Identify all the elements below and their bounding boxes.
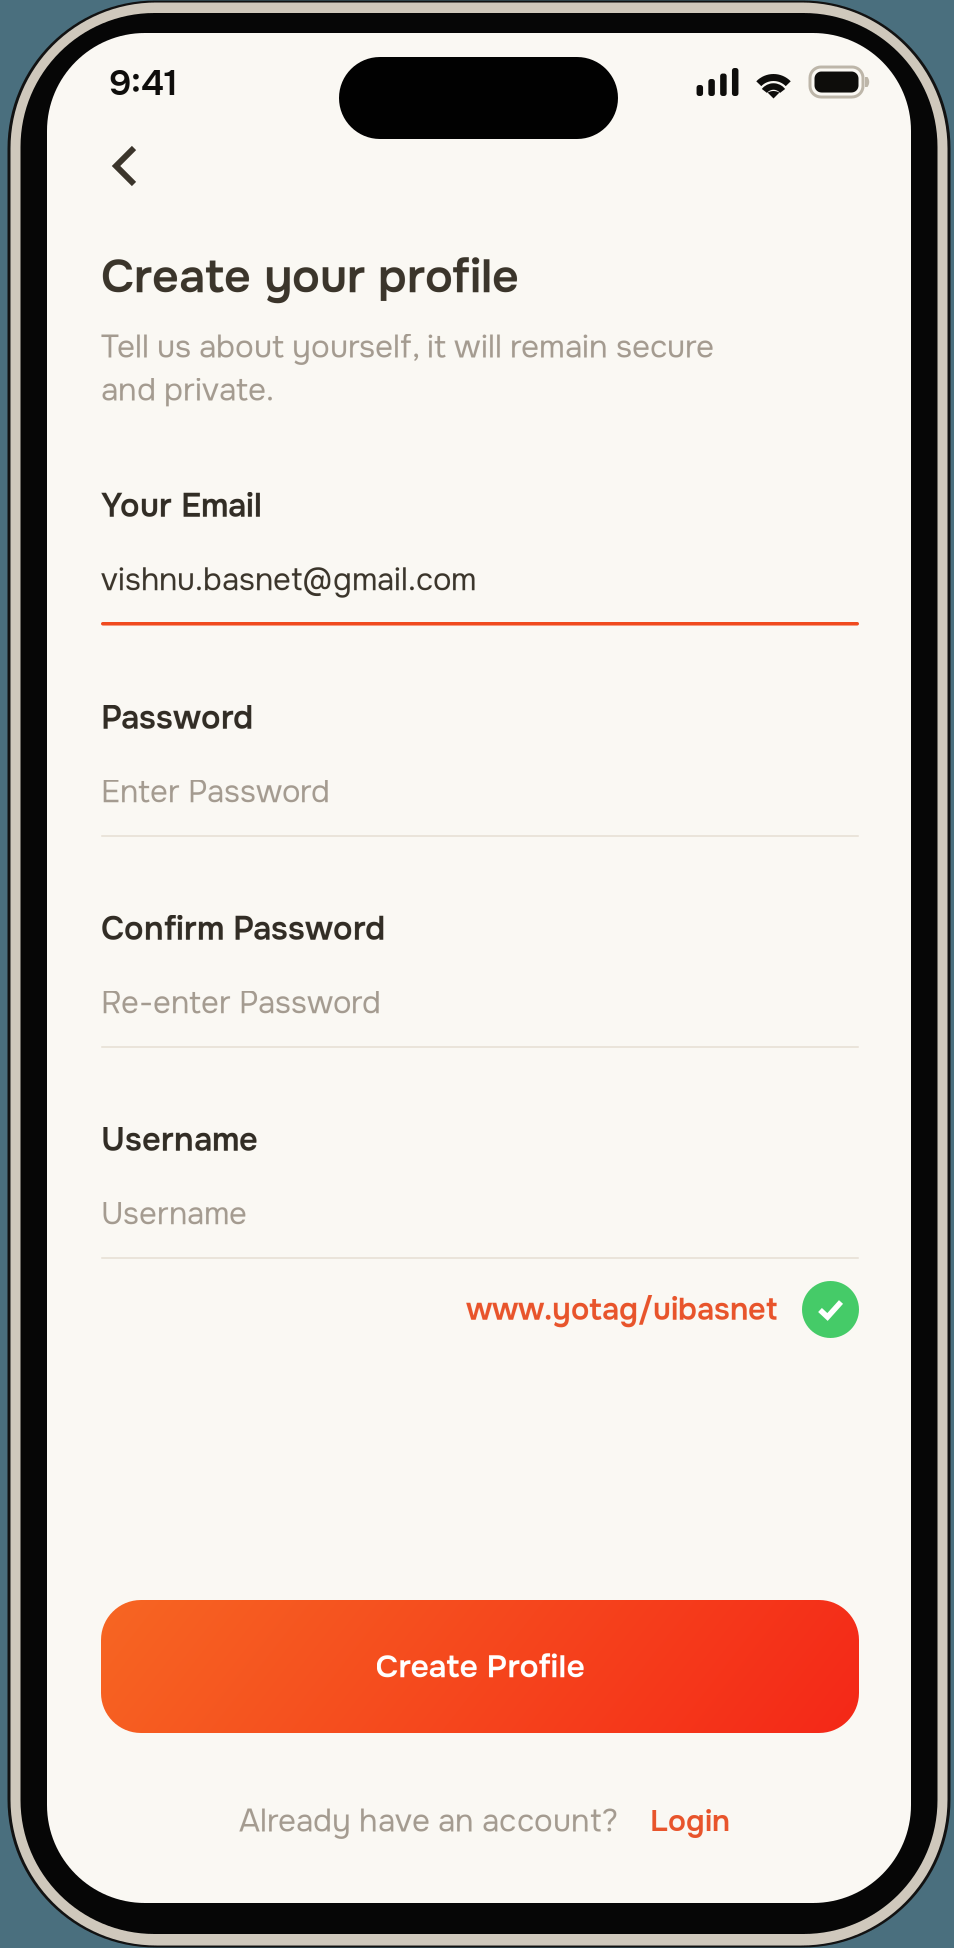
staticText: Already have an account?	[239, 1801, 618, 1841]
staticText: vishnu.basnet@gmail.com	[101, 560, 476, 600]
staticText: Enter Password	[101, 772, 330, 812]
staticText: Re-enter Password	[101, 983, 381, 1023]
staticText: Create Profile	[375, 1646, 584, 1687]
button[interactable]: Back	[96, 128, 172, 204]
staticText: www.yotag/uibasnet	[466, 1290, 777, 1329]
staticText: 9:41	[109, 60, 178, 106]
staticText: Password	[101, 697, 253, 739]
staticText: Login	[650, 1802, 730, 1840]
staticText: Confirm Password	[101, 908, 385, 950]
staticText: Tell us about yourself, it will remain s…	[101, 327, 714, 367]
staticText: and private.	[101, 370, 274, 410]
staticText: Your Email	[101, 485, 262, 527]
button[interactable]: Create Profile	[101, 1600, 859, 1733]
staticText: Create your profile	[101, 247, 519, 306]
button[interactable]: Login	[650, 1802, 730, 1840]
staticText: Username	[101, 1119, 258, 1161]
staticText: Username	[101, 1194, 247, 1234]
